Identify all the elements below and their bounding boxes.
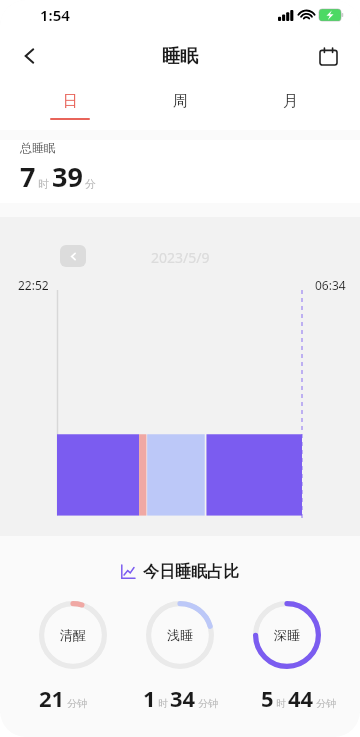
- button[interactable]: Previous day: [60, 245, 86, 267]
- staticText: 06:34: [315, 277, 346, 293]
- staticText: 分钟: [198, 697, 218, 710]
- staticText: 1:54: [40, 5, 70, 25]
- button[interactable]: 月: [250, 82, 330, 130]
- staticText: 今日睡眠占比: [143, 562, 239, 582]
- staticText: 2023/5/9: [151, 248, 210, 267]
- button[interactable]: 周: [140, 82, 220, 130]
- staticText: 时: [276, 697, 286, 710]
- staticText: 深睡: [274, 627, 300, 643]
- button[interactable]: 浅睡: [146, 601, 214, 669]
- staticText: 34: [170, 683, 196, 713]
- staticText: 浅睡: [167, 627, 193, 643]
- staticText: 分钟: [316, 697, 336, 710]
- staticText: 分: [85, 177, 96, 191]
- staticText: 睡眠: [162, 45, 198, 68]
- staticText: 5: [261, 683, 274, 713]
- staticText: 44: [288, 683, 314, 713]
- staticText: 时: [38, 177, 49, 191]
- button[interactable]: 清醒: [39, 601, 107, 669]
- staticText: 日: [63, 92, 78, 111]
- button[interactable]: 日: [30, 82, 110, 130]
- button[interactable]: 深睡: [253, 601, 321, 669]
- staticText: 时: [158, 697, 168, 710]
- staticText: 1: [143, 683, 156, 713]
- staticText: 22:52: [18, 277, 49, 293]
- staticText: 分钟: [67, 697, 87, 710]
- staticText: 39: [52, 158, 83, 195]
- button[interactable]: Calendar: [306, 34, 350, 78]
- staticText: 清醒: [60, 627, 86, 643]
- staticText: 总睡眠: [20, 140, 56, 155]
- staticText: 21: [39, 683, 65, 713]
- staticText: 周: [173, 92, 188, 111]
- staticText: 7: [20, 158, 36, 195]
- staticText: 月: [283, 92, 298, 111]
- button[interactable]: Back: [8, 34, 52, 78]
